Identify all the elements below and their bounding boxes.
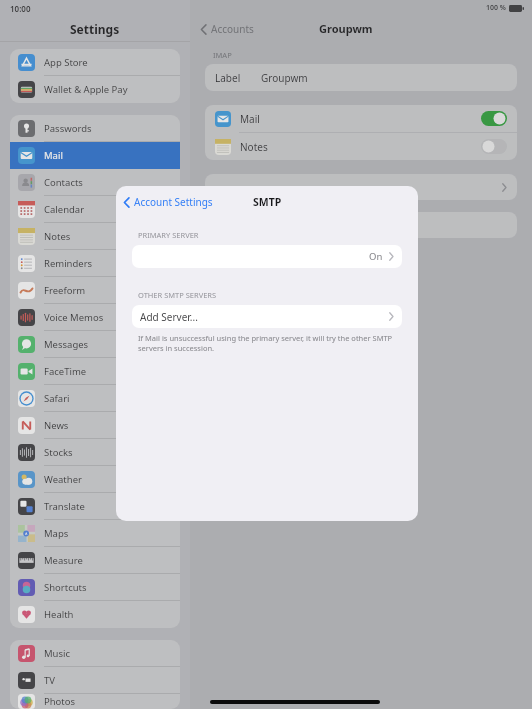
button[interactable]: Passwords (10, 115, 180, 142)
button[interactable]: Mail (10, 142, 180, 169)
button[interactable]: TV (10, 667, 180, 694)
staticText: Label (215, 71, 241, 85)
button[interactable]: Music (10, 640, 180, 667)
button[interactable]: Contacts (10, 169, 180, 196)
staticText: Contacts (44, 176, 83, 189)
button[interactable]: Maps (10, 520, 180, 547)
staticText: Accounts (211, 22, 254, 36)
button[interactable]: Notes (10, 223, 180, 250)
staticText: Calendar (44, 203, 85, 216)
staticText: Measure (44, 554, 83, 567)
staticText: Groupwm (319, 21, 373, 36)
button[interactable]: Voice Memos (10, 304, 180, 331)
staticText: Freeform (44, 284, 86, 297)
staticText: Stocks (44, 446, 73, 459)
button[interactable]: Notes (205, 133, 517, 160)
staticText: PRIMARY SERVER (138, 230, 199, 240)
button[interactable]: Weather (10, 466, 180, 493)
staticText: Weather (44, 473, 82, 486)
button[interactable]: Mail (205, 105, 517, 132)
staticText: Mail (44, 149, 63, 162)
staticText: Add Server... (140, 310, 198, 324)
staticText: IMAP (213, 50, 232, 60)
staticText: App Store (44, 56, 88, 69)
staticText: Health (44, 608, 74, 621)
button[interactable]: Freeform (10, 277, 180, 304)
staticText: TV (44, 674, 55, 687)
button[interactable]: Shortcuts (10, 574, 180, 601)
staticText: Groupwm (261, 71, 308, 85)
staticText: Safari (44, 392, 70, 405)
staticText: Shortcuts (44, 581, 87, 594)
staticText: Photos (44, 695, 76, 708)
staticText: OTHER SMTP SERVERS (138, 290, 217, 300)
button[interactable]: Measure (10, 547, 180, 574)
button[interactable]: FaceTime (10, 358, 180, 385)
button[interactable]: Stocks (10, 439, 180, 466)
staticText: On (369, 250, 383, 263)
button[interactable] (205, 212, 517, 238)
staticText: Music (44, 647, 71, 660)
staticText: Messages (44, 338, 89, 351)
button[interactable]: On (132, 245, 402, 268)
staticText: Notes (240, 140, 268, 154)
button[interactable]: News (10, 412, 180, 439)
button[interactable]: Wallet & Apple Pay (10, 76, 180, 103)
staticText: Mail (240, 112, 260, 126)
button[interactable]: Reminders (10, 250, 180, 277)
button[interactable]: Add Server... (132, 305, 402, 328)
button[interactable]: Health (10, 601, 180, 628)
button[interactable]: Calendar (10, 196, 180, 223)
staticText: If Mail is unsuccessful using the primar… (138, 333, 398, 353)
staticText: 100 % (486, 3, 506, 13)
button[interactable]: Label (205, 64, 517, 91)
staticText: Passwords (44, 122, 92, 135)
staticText: Wallet & Apple Pay (44, 83, 128, 96)
staticText: Maps (44, 527, 69, 540)
button[interactable]: Translate (10, 493, 180, 520)
staticText: Notes (44, 230, 71, 243)
staticText: Voice Memos (44, 311, 104, 324)
staticText: Account Settings (134, 195, 213, 209)
staticText: FaceTime (44, 365, 87, 378)
staticText: Reminders (44, 257, 93, 270)
button[interactable]: App Store (10, 49, 180, 76)
staticText: News (44, 419, 69, 432)
staticText: Settings (70, 21, 120, 37)
staticText: SMTP (253, 195, 282, 209)
staticText: Translate (44, 500, 85, 513)
button[interactable]: Safari (10, 385, 180, 412)
button[interactable]: Messages (10, 331, 180, 358)
button[interactable]: Accounts (200, 22, 254, 36)
staticText: 10:00 (10, 3, 31, 14)
button[interactable]: Photos (10, 694, 180, 709)
button[interactable] (205, 174, 517, 200)
button[interactable]: Account Settings (123, 195, 213, 209)
